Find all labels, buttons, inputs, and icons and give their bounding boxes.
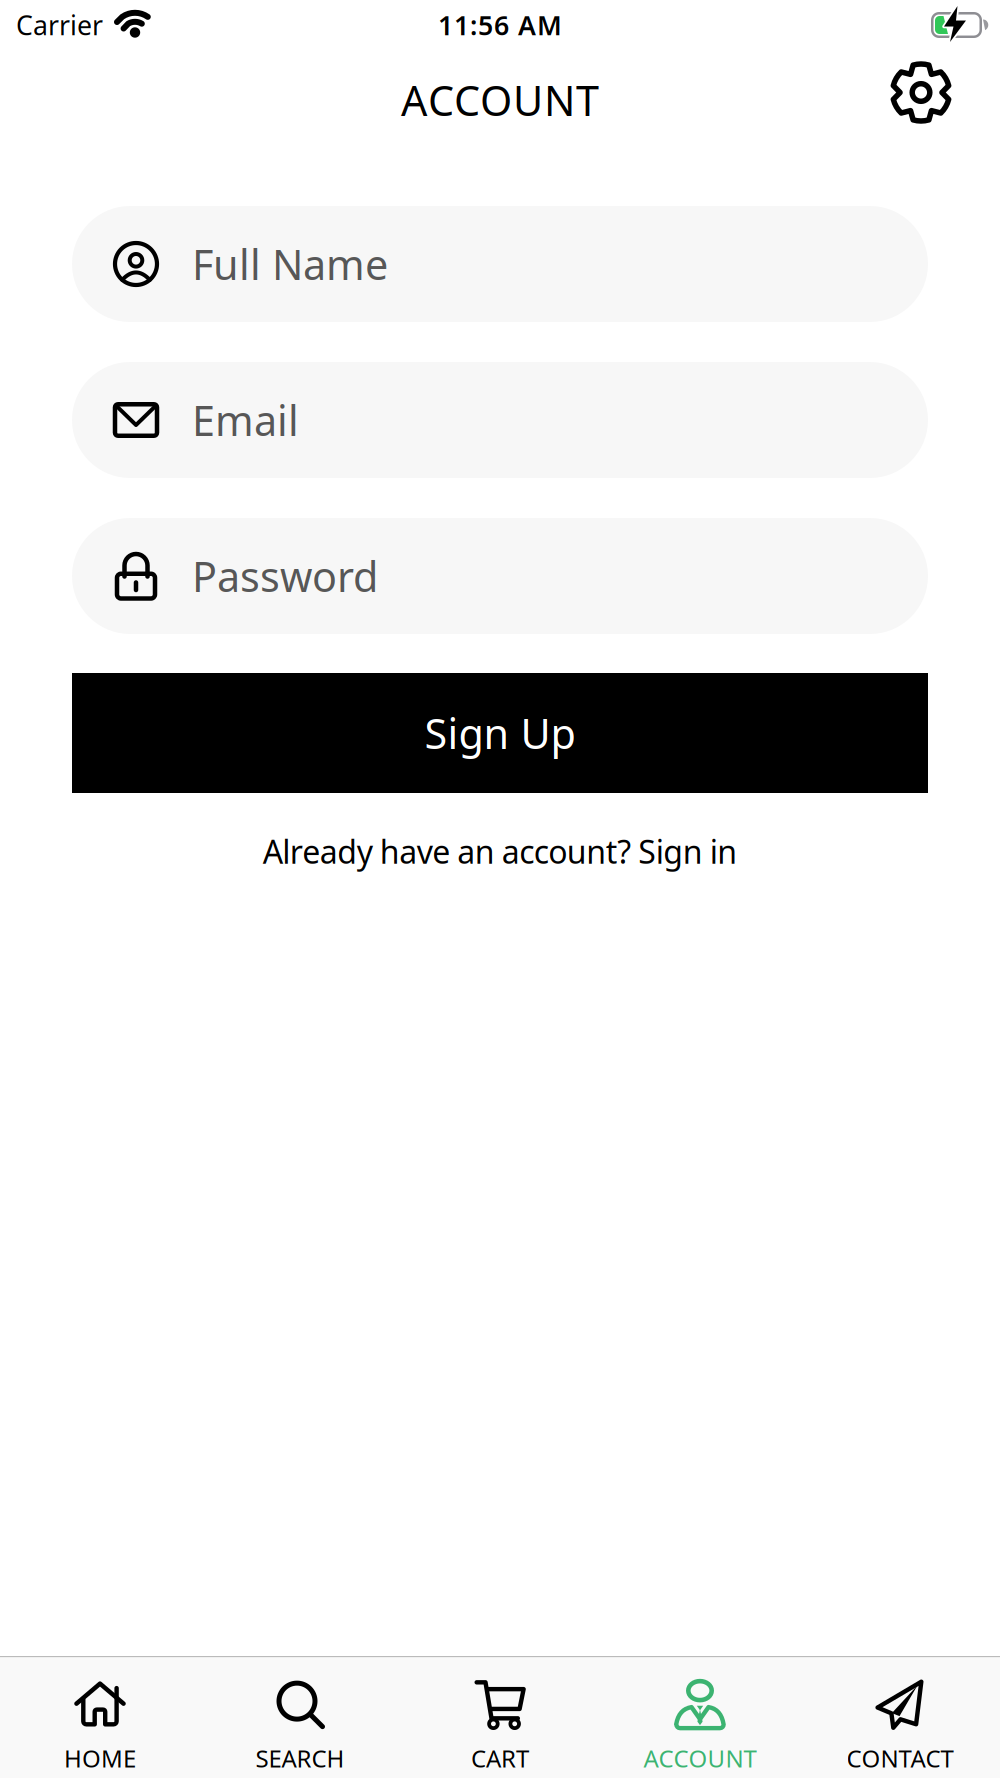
button[interactable]: Already have an account? Sign in (263, 830, 737, 872)
staticText: ACCOUNT (401, 73, 599, 127)
staticText: HOME (64, 1742, 136, 1774)
staticText: CONTACT (846, 1742, 953, 1774)
staticText: Password (192, 549, 378, 603)
button[interactable]: Sign Up (72, 673, 928, 793)
staticText: Carrier (16, 7, 103, 43)
staticText: 11:56 AM (438, 7, 562, 43)
staticText: Sign Up (424, 706, 575, 760)
button[interactable]: Password (72, 518, 928, 634)
staticText: ACCOUNT (643, 1742, 756, 1774)
button[interactable]: ACCOUNT (600, 1679, 800, 1774)
staticText: Already have an account? Sign in (263, 830, 737, 872)
button[interactable]: Full Name (72, 206, 928, 322)
staticText: CART (471, 1742, 529, 1774)
staticText: Email (192, 393, 299, 447)
button[interactable]: CART (400, 1679, 600, 1774)
button[interactable]: SEARCH (200, 1679, 400, 1774)
button[interactable]: CONTACT (800, 1679, 1000, 1774)
button[interactable]: Settings (890, 61, 1000, 138)
staticText: Full Name (192, 237, 388, 291)
button[interactable]: Email (72, 362, 928, 478)
staticText: SEARCH (255, 1742, 344, 1774)
button[interactable]: HOME (0, 1679, 200, 1774)
